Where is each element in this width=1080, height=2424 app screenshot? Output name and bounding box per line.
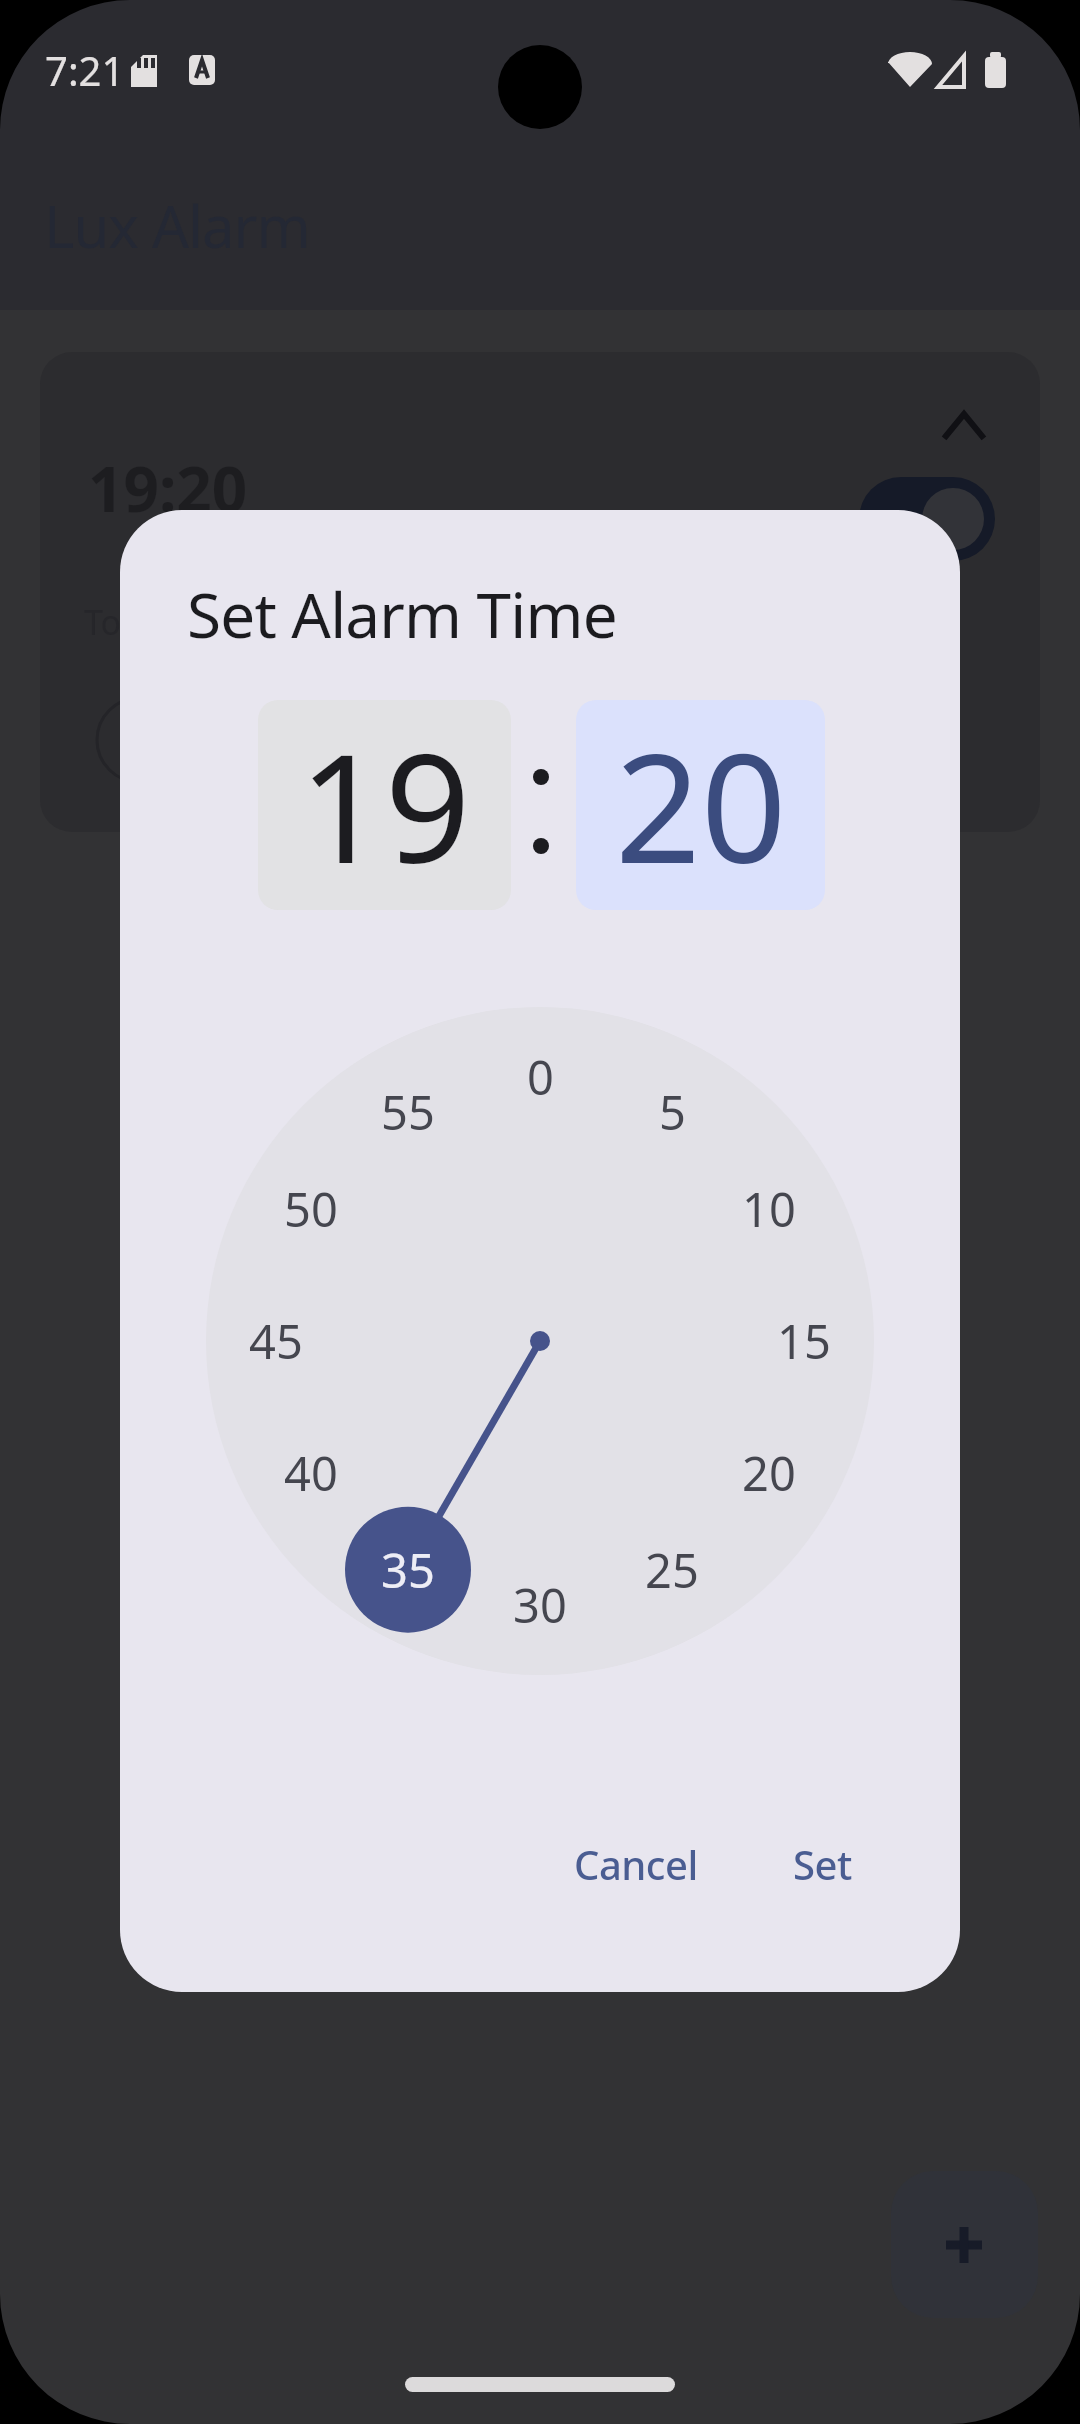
staticText: Cancel — [574, 1837, 698, 1891]
button[interactable]: 19 — [258, 700, 511, 910]
staticText: 15 — [777, 1309, 831, 1373]
staticText: 0 — [527, 1045, 554, 1109]
staticText: 20 — [615, 703, 787, 907]
staticText: Set Alarm Time — [187, 572, 617, 656]
staticText: Set — [793, 1837, 852, 1891]
button[interactable] — [40, 352, 1040, 832]
staticText: 30 — [513, 1573, 567, 1637]
button[interactable]: Cancel — [546, 1824, 726, 1904]
button[interactable] — [206, 1007, 874, 1675]
button[interactable] — [859, 477, 995, 561]
staticText: 25 — [645, 1538, 699, 1602]
button[interactable]: 20 — [576, 700, 825, 910]
staticText: 19 — [299, 703, 471, 907]
staticText: 45 — [249, 1309, 303, 1373]
staticText: 7:21 — [45, 43, 125, 97]
staticText: 19:20 — [88, 446, 248, 530]
staticText: 50 — [284, 1177, 338, 1241]
staticText: 5 — [659, 1080, 686, 1144]
staticText: 20 — [742, 1441, 796, 1505]
button[interactable]: Set — [752, 1824, 892, 1904]
staticText: 55 — [381, 1080, 435, 1144]
button[interactable] — [891, 2171, 1038, 2318]
staticText: 10 — [742, 1177, 796, 1241]
staticText: Tomorrow — [84, 599, 248, 645]
staticText: 35 — [381, 1538, 435, 1602]
staticText: 40 — [284, 1441, 338, 1505]
